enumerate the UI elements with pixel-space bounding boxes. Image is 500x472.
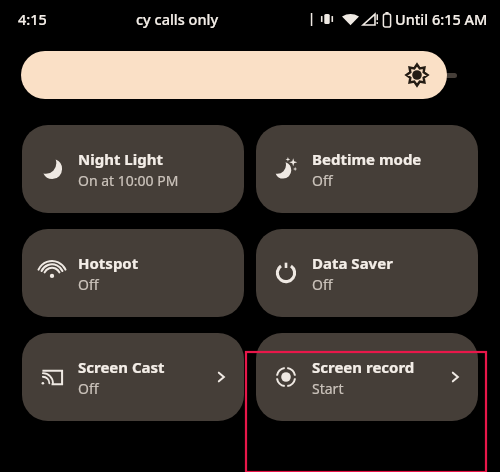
button[interactable]: Bedtime mode — [256, 125, 478, 213]
button[interactable]: Screen record — [256, 333, 478, 421]
staticText: Data Saver — [312, 253, 393, 273]
staticText: Off — [312, 171, 333, 190]
staticText: Screen record — [312, 357, 415, 377]
staticText: Bedtime mode — [312, 149, 422, 169]
staticText: Start — [312, 379, 344, 398]
staticText: cy calls only — [136, 9, 219, 29]
staticText: On at 10:00 PM — [78, 171, 179, 190]
staticText: Hotspot — [78, 253, 139, 273]
staticText: Off — [78, 275, 99, 294]
staticText: 4:15 — [18, 9, 47, 29]
button[interactable]: Brightness — [21, 51, 447, 99]
staticText: Night Light — [78, 149, 163, 169]
staticText: Screen Cast — [78, 357, 165, 377]
button[interactable]: Data Saver — [256, 229, 478, 317]
button[interactable]: Night Light — [22, 125, 244, 213]
staticText: Until 6:15 AM — [395, 9, 488, 29]
staticText: Off — [78, 379, 99, 398]
staticText: Off — [312, 275, 333, 294]
button[interactable]: Screen Cast — [22, 333, 244, 421]
button[interactable]: Hotspot — [22, 229, 244, 317]
